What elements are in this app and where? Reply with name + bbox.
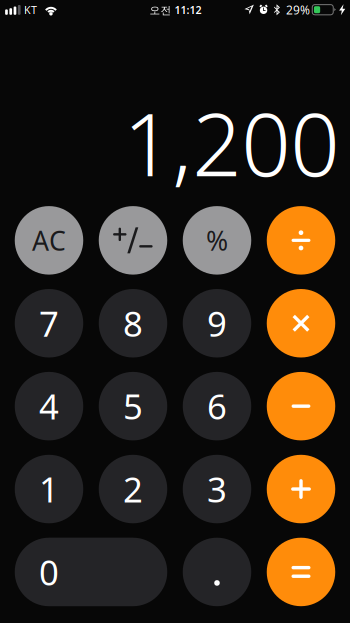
staticText: 1 bbox=[39, 466, 59, 512]
staticText: 1,200 bbox=[123, 85, 339, 200]
button[interactable]: Plus bbox=[267, 455, 335, 523]
button[interactable]: Plus minus bbox=[99, 206, 167, 275]
button[interactable]: Divide bbox=[267, 206, 335, 275]
staticText: 7 bbox=[39, 300, 59, 346]
button[interactable]: 7 bbox=[15, 289, 83, 357]
staticText: 9 bbox=[207, 300, 227, 346]
button[interactable]: AC bbox=[15, 206, 83, 275]
button[interactable]: 8 bbox=[99, 289, 167, 357]
staticText: 8 bbox=[123, 300, 143, 346]
button[interactable]: Minus bbox=[267, 372, 335, 440]
staticText: 3 bbox=[207, 466, 227, 512]
button[interactable]: Equals bbox=[267, 538, 335, 606]
button[interactable]: % bbox=[183, 206, 251, 275]
staticText: 2 bbox=[123, 466, 143, 512]
button[interactable]: 1 bbox=[15, 455, 83, 523]
button[interactable]: 2 bbox=[99, 455, 167, 523]
staticText: 6 bbox=[207, 383, 227, 429]
staticText: 5 bbox=[123, 383, 143, 429]
staticText: 29% bbox=[286, 2, 310, 18]
staticText: % bbox=[206, 223, 228, 258]
staticText: 4 bbox=[39, 383, 59, 429]
button[interactable]: 4 bbox=[15, 372, 83, 440]
button[interactable]: 3 bbox=[183, 455, 251, 523]
button[interactable]: 6 bbox=[183, 372, 251, 440]
staticText: KT bbox=[24, 3, 37, 17]
button[interactable]: Multiply bbox=[267, 289, 335, 357]
button[interactable]: Decimal point bbox=[183, 538, 251, 606]
button[interactable]: 5 bbox=[99, 372, 167, 440]
button[interactable]: 0 bbox=[15, 538, 167, 606]
staticText: AC bbox=[32, 223, 66, 258]
button[interactable]: 9 bbox=[183, 289, 251, 357]
staticText: 오전 11:12 bbox=[150, 3, 202, 17]
staticText: 0 bbox=[39, 549, 59, 595]
